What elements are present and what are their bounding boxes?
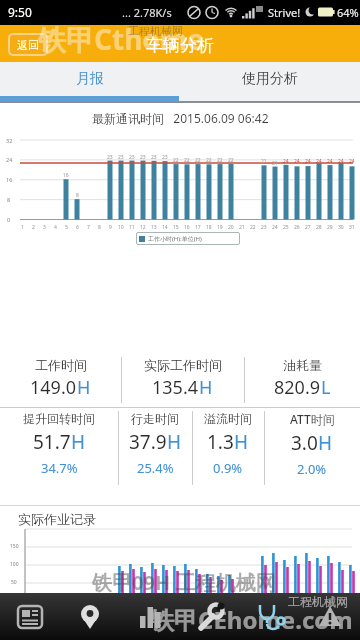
staticText: 15 bbox=[173, 224, 179, 231]
staticText: 20 bbox=[228, 224, 234, 231]
staticText: 最新通讯时间 2015.06.09 06:42 bbox=[92, 110, 269, 126]
staticText: 22 bbox=[228, 157, 234, 164]
button[interactable]: 月报 bbox=[0, 62, 180, 96]
staticText: 8 bbox=[76, 192, 79, 199]
staticText: 9 bbox=[109, 224, 112, 231]
staticText: H bbox=[318, 430, 333, 456]
staticText: 22 bbox=[206, 157, 212, 164]
staticText: 23 bbox=[118, 154, 124, 161]
staticText: 1.3 bbox=[207, 429, 234, 455]
staticText: 150 bbox=[10, 543, 19, 550]
staticText: 13 bbox=[151, 224, 157, 231]
staticText: 8 bbox=[98, 224, 101, 231]
staticText: ATT时间 bbox=[290, 411, 335, 427]
staticText: 0.9% bbox=[213, 459, 243, 477]
button[interactable]: 行走时间 bbox=[118, 411, 192, 483]
staticText: 27 bbox=[305, 224, 311, 231]
button[interactable] bbox=[10, 597, 50, 637]
staticText: 26 bbox=[294, 224, 300, 231]
staticText: ... 2.78K/s bbox=[122, 5, 172, 20]
button[interactable]: 油耗量 bbox=[244, 357, 360, 405]
staticText: 23 bbox=[151, 154, 157, 161]
staticText: 0 bbox=[7, 216, 11, 223]
staticText: Strive! bbox=[268, 5, 301, 20]
staticText: 工作小时(H):单位(H) bbox=[148, 235, 202, 243]
staticText: L bbox=[321, 375, 331, 400]
staticText: 24 bbox=[294, 158, 300, 165]
staticText: 8 bbox=[7, 196, 11, 203]
staticText: H bbox=[77, 375, 91, 400]
staticText: 车辆分析 bbox=[146, 35, 214, 56]
staticText: H bbox=[71, 429, 86, 455]
staticText: 31 bbox=[349, 224, 355, 231]
staticText: 1 bbox=[21, 224, 24, 231]
staticText: 24 bbox=[338, 158, 344, 165]
button[interactable] bbox=[310, 597, 350, 637]
staticText: 25.4% bbox=[137, 459, 174, 477]
staticText: 3.0 bbox=[291, 430, 318, 456]
staticText: 23 bbox=[140, 154, 146, 161]
button[interactable] bbox=[130, 597, 170, 637]
staticText: 月报 bbox=[76, 70, 104, 88]
button[interactable] bbox=[190, 597, 230, 637]
staticText: 51.7 bbox=[33, 429, 71, 455]
staticText: 2.0% bbox=[297, 460, 327, 478]
staticText: 28 bbox=[316, 224, 322, 231]
staticText: 溢流时间 bbox=[204, 411, 252, 426]
staticText: 29 bbox=[327, 224, 333, 231]
staticText: 返回 bbox=[17, 38, 39, 52]
staticText: 6 bbox=[76, 224, 79, 231]
staticText: H bbox=[167, 429, 182, 455]
staticText: 12 bbox=[140, 224, 146, 231]
staticText: 22 bbox=[217, 157, 223, 164]
staticText: 使用分析 bbox=[242, 70, 298, 88]
staticText: 行走时间 bbox=[131, 411, 179, 426]
staticText: 16 bbox=[63, 172, 69, 179]
staticText: 100 bbox=[10, 561, 19, 568]
staticText: 工作时间 bbox=[35, 357, 87, 373]
staticText: 4 bbox=[54, 224, 57, 231]
staticText: 32 bbox=[6, 137, 13, 144]
staticText: 24 bbox=[283, 158, 289, 165]
staticText: 23 bbox=[107, 154, 113, 161]
staticText: 19 bbox=[217, 224, 223, 231]
button[interactable]: 溢流时间 bbox=[192, 411, 264, 483]
staticText: 22 bbox=[184, 157, 190, 164]
button[interactable]: 使用分析 bbox=[180, 62, 360, 96]
staticText: 24 bbox=[6, 156, 13, 163]
staticText: 50 bbox=[11, 579, 17, 586]
staticText: 工程机械网 bbox=[128, 24, 183, 38]
button[interactable]: 工作时间 bbox=[0, 357, 121, 405]
staticText: 实际作业记录 bbox=[18, 511, 96, 527]
staticText: 实际工作时间 bbox=[144, 357, 222, 373]
button[interactable]: ATT时间 bbox=[264, 411, 360, 483]
staticText: 24 bbox=[272, 224, 278, 231]
staticText: 23 bbox=[261, 224, 267, 231]
staticText: 铁甲Cthome bbox=[38, 20, 204, 58]
staticText: 9:50 bbox=[8, 4, 32, 20]
staticText: 23 bbox=[129, 154, 135, 161]
staticText: 22 bbox=[173, 157, 179, 164]
staticText: 提升回转时间 bbox=[23, 411, 95, 426]
staticText: 24 bbox=[327, 158, 333, 165]
button[interactable] bbox=[70, 597, 110, 637]
staticText: 135.4 bbox=[152, 375, 199, 400]
button[interactable]: 实际工作时间 bbox=[121, 357, 244, 405]
staticText: 24 bbox=[316, 158, 322, 165]
staticText: 17 bbox=[195, 224, 201, 231]
staticText: 14 bbox=[162, 224, 168, 231]
staticText: 30 bbox=[338, 224, 344, 231]
button[interactable]: 提升回转时间 bbox=[0, 411, 118, 483]
staticText: 16 bbox=[6, 176, 13, 183]
button[interactable]: 返回 bbox=[8, 33, 48, 56]
staticText: 2 bbox=[32, 224, 35, 231]
staticText: H bbox=[234, 429, 249, 455]
staticText: 64% bbox=[337, 5, 359, 20]
staticText: 37.9 bbox=[129, 429, 167, 455]
staticText: 7 bbox=[87, 224, 90, 231]
staticText: 149.0 bbox=[30, 375, 77, 400]
button[interactable] bbox=[250, 597, 290, 637]
staticText: 10 bbox=[118, 224, 124, 231]
staticText: 18 bbox=[206, 224, 212, 231]
staticText: 铁甲09H 工程机械网 bbox=[92, 569, 276, 596]
